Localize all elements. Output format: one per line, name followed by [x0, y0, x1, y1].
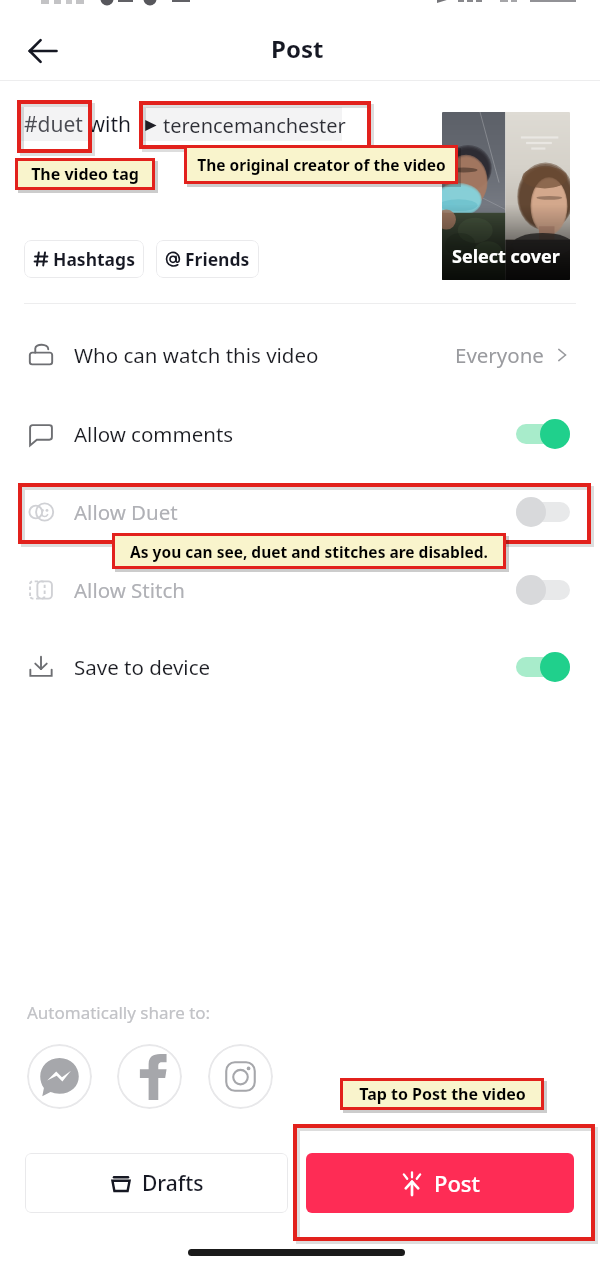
- staticText: #duet: [24, 110, 83, 139]
- staticText: Friends: [185, 247, 250, 271]
- staticText: Post: [271, 32, 324, 65]
- staticText: Tap to Post the video: [359, 1083, 526, 1105]
- button[interactable]: Messenger: [27, 1044, 92, 1109]
- staticText: Post: [434, 1168, 480, 1198]
- staticText: Allow comments: [74, 420, 234, 448]
- staticText: with: [83, 110, 137, 139]
- staticText: Drafts: [142, 1169, 204, 1198]
- button[interactable]: Allow comments: [0, 404, 600, 464]
- staticText: Who can watch this video: [74, 341, 319, 369]
- button[interactable]: Facebook: [117, 1044, 182, 1109]
- staticText: The original creator of the video: [197, 154, 446, 175]
- staticText: As you can see, duet and stitches are di…: [130, 541, 488, 562]
- staticText: Hashtags: [53, 247, 135, 271]
- staticText: Automatically share to:: [27, 1001, 211, 1024]
- button[interactable]: Drafts: [25, 1153, 288, 1213]
- staticText: Select cover: [452, 244, 560, 269]
- button[interactable]: Allow Duet: [0, 482, 600, 542]
- button[interactable]: Hashtags: [24, 240, 144, 278]
- staticText: Everyone: [455, 341, 544, 369]
- button[interactable]: Who can watch this video: [0, 325, 600, 385]
- button[interactable]: Post: [306, 1153, 574, 1213]
- button[interactable]: Allow Stitch: [0, 560, 600, 620]
- staticText: The video tag: [31, 163, 139, 185]
- button[interactable]: Save to device: [0, 637, 600, 697]
- staticText: terencemanchester: [163, 112, 346, 139]
- staticText: Allow Duet: [74, 498, 178, 526]
- button[interactable]: Instagram: [208, 1044, 273, 1109]
- button[interactable]: Back: [20, 28, 66, 74]
- staticText: Save to device: [74, 653, 211, 681]
- staticText: Allow Stitch: [74, 576, 185, 604]
- button[interactable]: Friends: [156, 240, 259, 278]
